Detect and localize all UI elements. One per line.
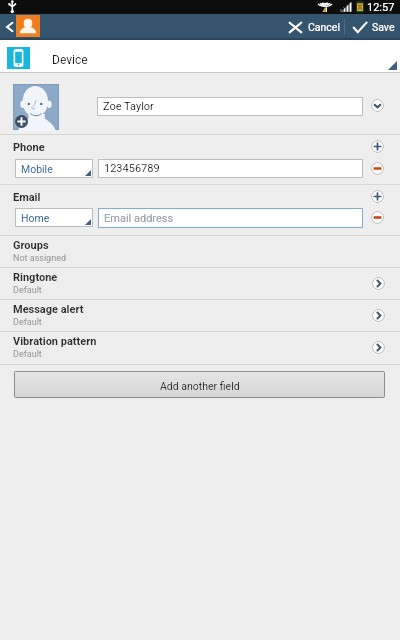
button[interactable]: Vibration pattern bbox=[0, 331, 400, 363]
staticText: 12:57 bbox=[367, 1, 395, 14]
staticText: Vibration pattern bbox=[13, 335, 97, 348]
button[interactable]: Home bbox=[15, 208, 93, 227]
staticText: 123456789 bbox=[104, 162, 160, 175]
staticText: Home bbox=[21, 212, 50, 224]
staticText: Default bbox=[13, 317, 42, 328]
button[interactable]: Ringtone bbox=[0, 267, 400, 299]
button[interactable]: Ringtone bbox=[372, 277, 385, 290]
button[interactable]: Add contact photo bbox=[14, 85, 58, 129]
button[interactable]: 123456789 bbox=[98, 159, 363, 178]
button[interactable]: Navigate up bbox=[0, 14, 40, 40]
staticText: Message alert bbox=[13, 303, 84, 316]
staticText: Device bbox=[52, 53, 88, 67]
button[interactable]: Vibration pattern bbox=[372, 341, 385, 354]
staticText: Phone bbox=[13, 141, 45, 154]
staticText: Zoe Taylor bbox=[103, 100, 154, 113]
button[interactable]: Message alert bbox=[372, 309, 385, 322]
staticText: Add another field bbox=[160, 380, 240, 392]
staticText: Default bbox=[13, 349, 42, 360]
staticText: Groups bbox=[13, 239, 49, 252]
button[interactable]: Save bbox=[345, 14, 399, 40]
button[interactable]: Cancel bbox=[281, 14, 344, 40]
button[interactable]: Mobile bbox=[15, 159, 93, 178]
button[interactable]: Email address bbox=[98, 208, 363, 228]
staticText: Default bbox=[13, 285, 42, 296]
button[interactable]: Add another field bbox=[15, 372, 384, 397]
staticText: Not assigned bbox=[13, 253, 66, 264]
button[interactable]: Remove email bbox=[371, 211, 384, 224]
staticText: Cancel bbox=[308, 21, 340, 33]
button[interactable]: Device bbox=[0, 40, 400, 73]
button[interactable]: Groups bbox=[0, 235, 400, 267]
staticText: Email address bbox=[104, 212, 174, 225]
staticText: Mobile bbox=[21, 163, 53, 175]
button[interactable]: Remove phone bbox=[371, 162, 384, 175]
staticText: Ringtone bbox=[13, 271, 58, 284]
button[interactable]: Add phone bbox=[371, 140, 384, 153]
button[interactable]: Message alert bbox=[0, 299, 400, 331]
staticText: Save bbox=[372, 21, 395, 33]
button[interactable]: Zoe Taylor bbox=[97, 97, 363, 116]
button[interactable]: Add email bbox=[371, 190, 384, 203]
button[interactable]: Expand name bbox=[371, 99, 384, 112]
staticText: Email bbox=[13, 191, 41, 204]
